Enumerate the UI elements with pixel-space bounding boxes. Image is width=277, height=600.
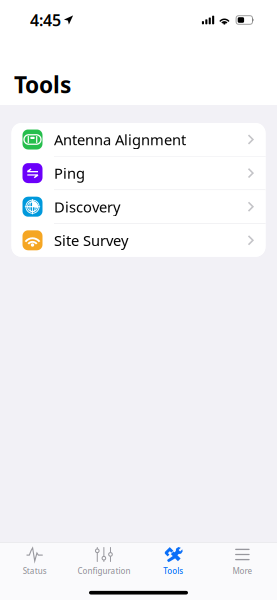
staticText: Status [23, 565, 47, 576]
staticText: Antenna Alignment [54, 130, 186, 149]
staticText: More [232, 565, 252, 576]
staticText: Configuration [77, 565, 130, 576]
button[interactable]: Site Survey [11, 224, 265, 257]
button[interactable]: Tools [138, 542, 208, 580]
button[interactable]: Discovery [11, 190, 265, 224]
staticText: Ping [54, 163, 85, 183]
button[interactable]: More [208, 542, 277, 580]
staticText: 4:45 [30, 9, 61, 31]
button[interactable]: Ping [11, 157, 265, 190]
staticText: Site Survey [54, 231, 128, 250]
staticText: Tools [163, 565, 183, 576]
button[interactable]: Antenna Alignment [11, 123, 265, 157]
staticText: Discovery [54, 197, 120, 216]
button[interactable]: Status [0, 542, 69, 580]
staticText: Tools [14, 69, 71, 99]
button[interactable]: Configuration [69, 542, 138, 580]
